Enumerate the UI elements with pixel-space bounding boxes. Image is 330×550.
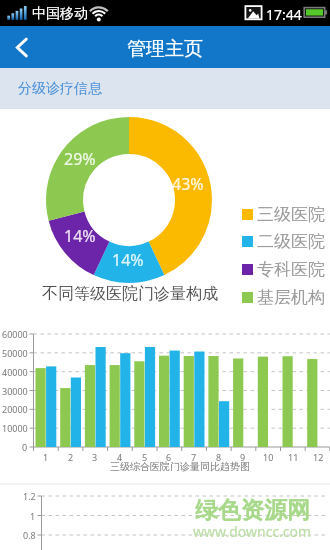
staticText: 50000	[2, 347, 28, 359]
staticText: 绿色资源网	[195, 496, 310, 524]
staticText: 三级综合医院门诊量同比趋势图	[110, 460, 250, 473]
button[interactable]: 基层机构	[242, 286, 325, 308]
staticText: 17:44	[266, 5, 302, 24]
staticText: 0	[22, 441, 28, 453]
staticText: 1	[30, 510, 36, 522]
staticText: 中国移动	[32, 5, 88, 23]
staticText: 8	[216, 451, 222, 463]
staticText: 2	[68, 451, 74, 463]
staticText: 30000	[2, 385, 28, 397]
staticText: 1	[43, 451, 49, 463]
staticText: 14%	[64, 225, 96, 247]
staticText: 管理主页	[127, 37, 203, 61]
staticText: 专科医院	[257, 259, 325, 280]
button[interactable]: 专科医院	[242, 258, 325, 280]
staticText: 1.2	[23, 490, 36, 502]
button[interactable]: 二级医院	[242, 230, 325, 252]
staticText: 20000	[2, 403, 28, 415]
staticText: 60000	[2, 328, 28, 340]
button[interactable]: Back	[0, 26, 42, 68]
button[interactable]: 三级医院	[242, 203, 325, 225]
staticText: 10000	[2, 422, 28, 434]
staticText: 二级医院	[257, 231, 325, 252]
staticText: 5	[142, 451, 148, 463]
staticText: 3	[92, 451, 98, 463]
staticText: 基层机构	[257, 287, 325, 308]
staticText: 6	[166, 451, 172, 463]
staticText: 14%	[112, 249, 144, 271]
staticText: 7	[191, 451, 197, 463]
staticText: 三级医院	[257, 204, 325, 225]
staticText: 9	[240, 451, 246, 463]
staticText: 43%	[172, 173, 204, 195]
staticText: 0.8	[23, 529, 36, 541]
staticText: 40000	[2, 366, 28, 378]
button[interactable]: 分级诊疗信息	[0, 68, 330, 109]
staticText: 分级诊疗信息	[18, 80, 102, 98]
staticText: 不同等级医院门诊量构成	[42, 284, 218, 304]
staticText: 11	[288, 451, 299, 463]
staticText: 10	[263, 451, 274, 463]
staticText: 4	[117, 451, 123, 463]
staticText: 12	[313, 451, 324, 463]
staticText: 29%	[64, 148, 96, 170]
staticText: www.downcc.com	[193, 522, 312, 541]
